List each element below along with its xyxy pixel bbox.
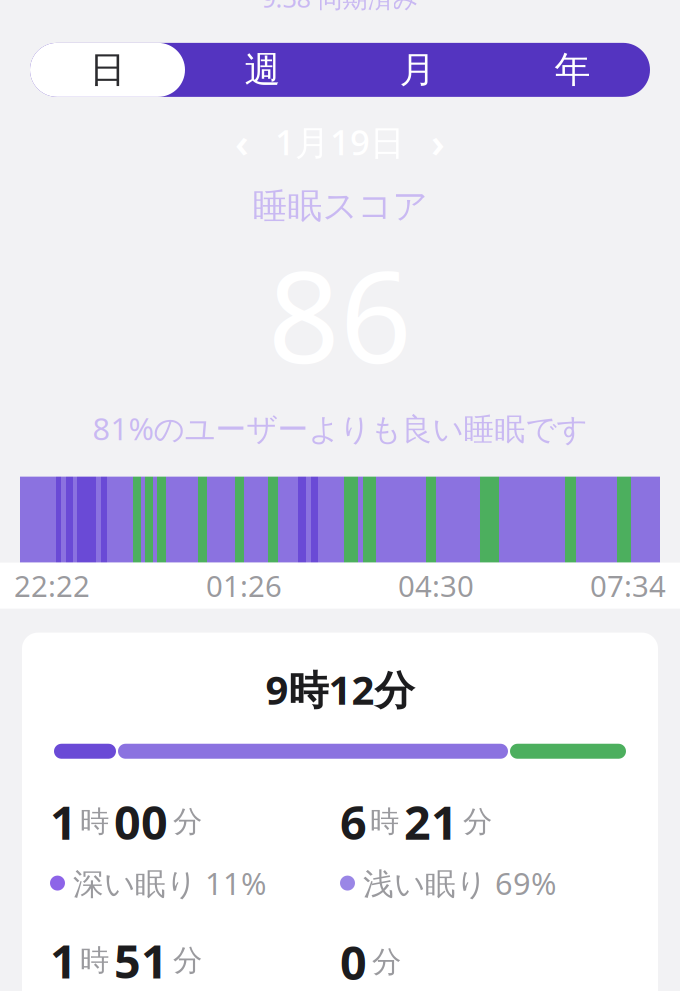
staticText: 分 (173, 942, 202, 978)
button[interactable]: 月 (340, 43, 495, 97)
staticText: 週 (244, 48, 280, 92)
button[interactable]: 日 (30, 43, 185, 97)
staticText: 9時12分 (265, 663, 414, 716)
staticText: 時 (80, 804, 109, 840)
staticText: 分 (463, 804, 492, 840)
staticText: 1月19日 (275, 119, 405, 165)
staticText: 分 (372, 944, 401, 980)
staticText: 月 (399, 48, 435, 92)
staticText: ‹ (235, 115, 249, 168)
staticText: › (431, 115, 445, 168)
staticText: 6 (340, 791, 367, 853)
staticText: 1 (50, 791, 77, 853)
staticText: 時 (370, 804, 399, 840)
staticText: 22:22 (14, 566, 90, 605)
staticText: 21 (404, 791, 458, 853)
staticText: 9:38 同期済み (261, 0, 418, 15)
staticText: 00 (114, 791, 168, 853)
staticText: 睡眠スコア (252, 185, 427, 227)
staticText: 年 (554, 48, 590, 92)
staticText: 深い眠り 11% (73, 863, 266, 903)
staticText: 時 (80, 942, 109, 978)
staticText: 浅い眠り 69% (363, 863, 556, 903)
button[interactable]: 週 (185, 43, 340, 97)
staticText: 07:34 (590, 566, 666, 605)
staticText: 分 (173, 804, 202, 840)
staticText: 86 (268, 231, 412, 398)
staticText: 51 (114, 929, 168, 991)
staticText: 01:26 (206, 566, 282, 605)
button[interactable]: 年 (495, 43, 650, 97)
staticText: 04:30 (398, 566, 474, 605)
staticText: 日 (89, 48, 125, 92)
staticText: 81%のユーザーよりも良い睡眠です (92, 408, 587, 449)
staticText: 1 (50, 929, 77, 991)
staticText: 0 (340, 931, 367, 991)
